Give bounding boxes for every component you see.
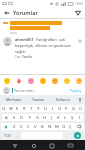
staticText: R	[23, 106, 26, 112]
button[interactable]: ahmet061	[3, 37, 82, 59]
staticText: Tamam	[32, 97, 45, 102]
button[interactable]: I	[49, 105, 56, 112]
button[interactable]: J	[48, 114, 55, 121]
button[interactable]: Q	[1, 105, 7, 112]
button[interactable]: Back	[3, 9, 11, 17]
staticText: K	[57, 115, 60, 121]
staticText: X	[20, 124, 23, 130]
staticText: W	[9, 106, 13, 112]
staticText: Yorum ekle...	[14, 88, 36, 93]
staticText: A	[5, 115, 8, 121]
staticText: Ğ	[72, 106, 76, 112]
button[interactable]: Kullanıcı	[51, 95, 76, 104]
button[interactable]: ?123	[1, 132, 14, 139]
button[interactable]: Yorum ekle...	[14, 88, 70, 93]
button[interactable]: Y	[35, 105, 42, 112]
staticText: Fotoğrafları	[36, 37, 57, 42]
staticText: ?123	[4, 134, 11, 138]
button[interactable]: Home	[29, 141, 38, 150]
staticText: G	[36, 115, 40, 121]
staticText: V	[34, 124, 37, 130]
button[interactable]: Send	[74, 132, 81, 139]
button[interactable]: G	[34, 114, 41, 121]
staticText: Paylaş	[70, 88, 82, 93]
staticText: D	[20, 115, 24, 121]
button[interactable]: C	[25, 123, 32, 130]
staticText: M	[55, 124, 59, 130]
button[interactable]: Like	[78, 39, 82, 43]
button[interactable]: ,	[14, 131, 21, 140]
staticText: Ö	[62, 124, 66, 130]
button[interactable]: Voice input	[76, 95, 83, 104]
button[interactable]: V	[32, 123, 39, 130]
button[interactable]: N	[46, 123, 53, 130]
staticText: Ü	[79, 106, 83, 112]
staticText: 1sa	[15, 55, 20, 59]
staticText: Yorumlar	[13, 9, 38, 16]
button[interactable]: U	[42, 105, 49, 112]
button[interactable]: Emoji 1	[3, 77, 10, 84]
button[interactable]: İ	[76, 114, 83, 121]
staticText: N	[48, 124, 52, 130]
button[interactable]: P	[63, 105, 70, 112]
staticText: L	[64, 115, 67, 121]
button[interactable]: X	[18, 123, 25, 130]
button[interactable]: E	[14, 105, 21, 112]
button[interactable]: B	[39, 123, 46, 130]
button[interactable]: Ö	[60, 123, 67, 130]
button[interactable]: Paylaş	[70, 88, 82, 93]
staticText: Q	[2, 106, 6, 112]
button[interactable]: Z	[11, 123, 18, 130]
staticText: T	[30, 106, 33, 112]
staticText: Ç	[69, 124, 72, 130]
staticText: Y	[37, 106, 40, 112]
button[interactable]: Emoji 2	[15, 77, 22, 84]
button[interactable]: Recent apps	[47, 141, 56, 150]
button[interactable]: Backspace	[74, 123, 84, 130]
button[interactable]: S	[10, 114, 18, 121]
staticText: P	[65, 106, 68, 112]
button[interactable]: Ç	[67, 123, 74, 130]
button[interactable]: O	[56, 105, 63, 112]
staticText: E	[16, 106, 19, 112]
button[interactable]: Shift	[1, 123, 11, 130]
staticText: S	[13, 115, 16, 121]
button[interactable]: Emoji 6	[63, 77, 70, 84]
button[interactable]: Emoji 4	[39, 77, 46, 84]
staticText: C	[27, 124, 30, 130]
button[interactable]: Ü	[77, 105, 84, 112]
button[interactable]: Emoji 7	[75, 77, 82, 84]
staticText: I	[52, 106, 54, 112]
button[interactable]: Merhaba	[2, 95, 26, 104]
button[interactable]: H	[41, 114, 48, 121]
button[interactable]: T	[28, 105, 35, 112]
button[interactable]: A	[2, 114, 10, 121]
staticText: B	[41, 124, 44, 130]
button[interactable]: D	[18, 114, 26, 121]
button[interactable]: L	[62, 114, 69, 121]
staticText: F	[29, 115, 32, 121]
staticText: ahmet061	[15, 37, 34, 42]
button[interactable]: K	[55, 114, 62, 121]
button[interactable]: Back	[10, 141, 19, 150]
button[interactable]: Tamam	[26, 95, 51, 104]
button[interactable]: R	[21, 105, 28, 112]
button[interactable]: Switch keyboard	[66, 141, 75, 150]
button[interactable]: Ğ	[70, 105, 77, 112]
staticText: İ	[79, 115, 81, 121]
button[interactable]: Emoji 5	[51, 77, 58, 84]
staticText: Merhaba	[6, 97, 22, 102]
button[interactable]: Emoji 3	[27, 77, 34, 84]
button[interactable]: Share	[74, 9, 82, 17]
staticText: çok	[59, 37, 66, 42]
button[interactable]	[3, 21, 82, 34]
staticText: O	[58, 106, 62, 112]
staticText: başarılıydı, ellinize ve gözünüze	[15, 43, 71, 48]
button[interactable]: M	[53, 123, 60, 130]
staticText: Kullanıcı	[56, 97, 71, 102]
button[interactable]: W	[7, 105, 14, 112]
button[interactable]: F	[26, 114, 34, 121]
button[interactable]: Ş	[69, 114, 76, 121]
